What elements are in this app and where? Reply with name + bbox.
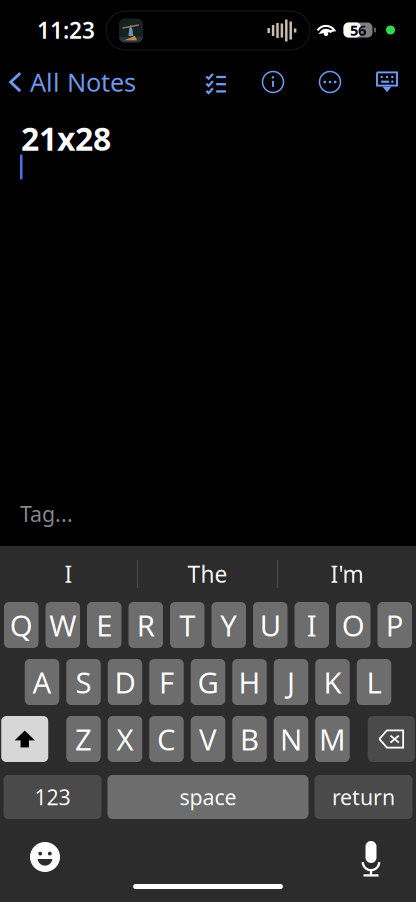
staticText: M (319, 719, 346, 758)
button[interactable]: Emoji (23, 841, 67, 873)
button[interactable]: Z (66, 716, 101, 762)
button[interactable]: G (191, 659, 225, 705)
staticText: N (280, 719, 302, 758)
button[interactable]: L (357, 659, 391, 705)
button[interactable]: V (191, 716, 225, 762)
button[interactable]: More (308, 60, 352, 104)
button[interactable]: B (232, 716, 267, 762)
staticText: Y (220, 605, 237, 644)
button[interactable]: W (45, 602, 80, 648)
button[interactable]: J (274, 659, 308, 705)
staticText: V (199, 719, 217, 758)
button[interactable]: C (149, 716, 184, 762)
button[interactable]: Shift (1, 716, 48, 762)
staticText: return (332, 783, 395, 811)
button[interactable]: Checklist (194, 60, 238, 104)
button[interactable]: return (314, 775, 412, 819)
button[interactable]: N (274, 716, 308, 762)
button[interactable]: I'm (278, 546, 416, 602)
button[interactable]: space (107, 775, 308, 819)
button[interactable]: I (0, 546, 137, 602)
button[interactable]: E (87, 602, 121, 648)
button[interactable]: I (294, 602, 329, 648)
button[interactable]: All Notes (0, 60, 150, 104)
staticText: X (116, 719, 133, 758)
staticText: 123 (34, 783, 70, 811)
staticText: D (114, 662, 135, 701)
button[interactable]: S (66, 659, 101, 705)
staticText: H (238, 662, 260, 701)
button[interactable]: T (170, 602, 204, 648)
staticText: W (49, 605, 76, 644)
button[interactable]: H (232, 659, 267, 705)
button[interactable]: Y (211, 602, 246, 648)
staticText: All Notes (30, 65, 136, 99)
staticText: F (159, 662, 174, 701)
button[interactable]: Dictate (349, 841, 393, 873)
staticText: The (187, 559, 227, 589)
button[interactable]: K (315, 659, 350, 705)
staticText: P (386, 605, 404, 644)
button[interactable]: X (108, 716, 142, 762)
staticText: 56 (350, 20, 366, 40)
button[interactable]: Info (251, 60, 295, 104)
staticText: J (287, 662, 295, 701)
button[interactable]: Q (4, 602, 38, 648)
staticText: C (157, 719, 176, 758)
staticText: O (342, 605, 365, 644)
staticText: I (64, 559, 72, 589)
staticText: space (179, 783, 236, 811)
staticText: A (32, 662, 51, 701)
button[interactable]: A (25, 659, 59, 705)
staticText: G (197, 662, 218, 701)
button[interactable]: D (108, 659, 142, 705)
button[interactable]: Delete (368, 716, 415, 762)
button[interactable]: P (377, 602, 412, 648)
staticText: Z (75, 719, 92, 758)
staticText: R (137, 605, 155, 644)
staticText: E (96, 605, 112, 644)
button[interactable]: Hide Keyboard (365, 60, 409, 104)
staticText: Tag... (20, 500, 73, 528)
staticText: B (240, 719, 259, 758)
button[interactable]: U (253, 602, 287, 648)
staticText: 21x28 (21, 117, 111, 159)
button[interactable]: The (138, 546, 277, 602)
button[interactable]: F (149, 659, 184, 705)
staticText: I'm (330, 559, 363, 589)
staticText: L (366, 662, 381, 701)
staticText: T (179, 605, 195, 644)
staticText: I (307, 605, 317, 644)
staticText: U (260, 605, 281, 644)
button[interactable]: R (128, 602, 163, 648)
staticText: 11:23 (37, 15, 95, 45)
button[interactable]: M (315, 716, 350, 762)
button[interactable]: O (336, 602, 370, 648)
staticText: Q (10, 605, 33, 644)
staticText: K (323, 662, 341, 701)
button[interactable]: 123 (3, 775, 101, 819)
staticText: S (75, 662, 91, 701)
